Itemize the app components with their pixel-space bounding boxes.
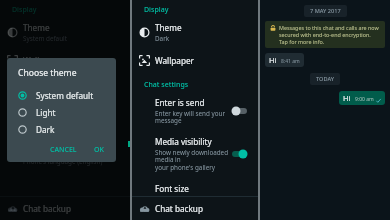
staticText: Dark bbox=[36, 124, 55, 135]
button[interactable]: OK bbox=[88, 143, 110, 157]
staticText: CANCEL bbox=[50, 145, 77, 155]
button[interactable]: CANCEL bbox=[45, 143, 82, 157]
button[interactable]: Messages to this chat and calls are now … bbox=[265, 21, 385, 48]
staticText: App Language bbox=[23, 145, 79, 156]
staticText: Wallpaper bbox=[23, 55, 62, 66]
button[interactable]: Theme bbox=[132, 18, 258, 47]
button[interactable]: Theme bbox=[0, 18, 130, 47]
button[interactable]: Wallpaper bbox=[0, 51, 130, 70]
staticText: Hi bbox=[269, 55, 277, 65]
button[interactable]: Chat backup bbox=[132, 197, 258, 220]
staticText: System default bbox=[23, 34, 67, 43]
staticText: System default bbox=[36, 90, 94, 101]
staticText: Media visibility bbox=[155, 136, 212, 147]
staticText: Font size bbox=[155, 183, 189, 192]
staticText: OK bbox=[94, 145, 104, 155]
staticText: Display bbox=[144, 5, 169, 15]
staticText: Choose theme bbox=[18, 67, 77, 79]
staticText: Enter is send bbox=[155, 97, 205, 108]
staticText: Light bbox=[36, 107, 56, 118]
button[interactable]: Font size bbox=[132, 179, 258, 196]
button[interactable]: Enter is send bbox=[132, 93, 258, 129]
staticText: Show newly downloaded media in your phon… bbox=[155, 148, 231, 172]
staticText: Hi bbox=[343, 93, 351, 103]
staticText: Theme bbox=[155, 22, 182, 33]
staticText: Messages to this chat and calls are now … bbox=[279, 24, 380, 45]
staticText: 7 MAY 2017 bbox=[310, 7, 341, 15]
button[interactable]: Chat backup bbox=[0, 197, 130, 220]
staticText: TODAY bbox=[316, 75, 334, 83]
staticText: Dark bbox=[155, 34, 170, 43]
staticText: Enter key will send your message bbox=[155, 109, 231, 125]
button[interactable]: System default bbox=[18, 87, 110, 104]
staticText: Chat backup bbox=[155, 203, 203, 214]
button[interactable]: Light bbox=[18, 104, 110, 121]
staticText: 8:41 am bbox=[281, 58, 300, 65]
staticText: Chat backup bbox=[23, 203, 71, 214]
button[interactable]: Dark bbox=[18, 121, 110, 138]
staticText: Wallpaper bbox=[155, 55, 194, 66]
button[interactable]: Media visibility bbox=[132, 132, 258, 176]
staticText: Chat settings bbox=[144, 80, 189, 90]
staticText: Display bbox=[12, 5, 37, 15]
staticText: Theme bbox=[23, 22, 50, 33]
staticText: Phone's language (English) bbox=[23, 157, 103, 166]
button[interactable]: Wallpaper bbox=[132, 51, 258, 70]
button[interactable]: App Language bbox=[0, 141, 130, 170]
staticText: 9:00 am bbox=[355, 96, 374, 103]
